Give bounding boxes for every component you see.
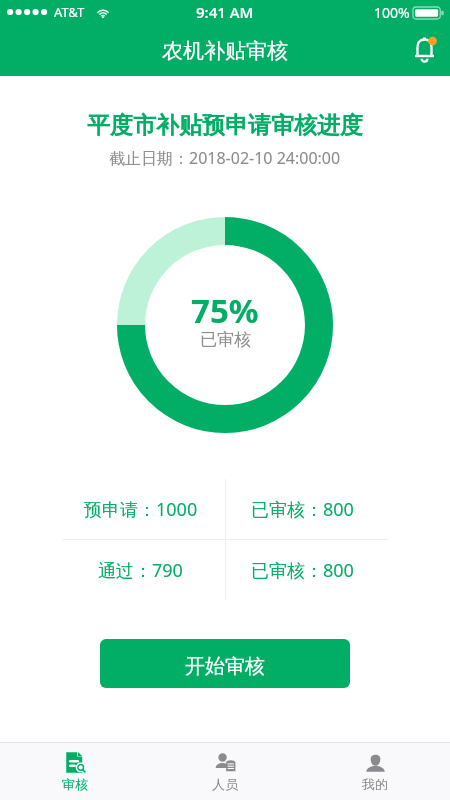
staticText: 人员 (212, 776, 238, 792)
staticText: 农机补贴审核 (162, 38, 288, 64)
staticText: AT&T (54, 3, 85, 21)
staticText: 截止日期：2018-02-10 24:00:00 (109, 147, 341, 169)
staticText: 已审核：800 (251, 558, 354, 583)
staticText: 审核 (62, 776, 88, 792)
staticText: 通过：790 (98, 558, 183, 583)
staticText: 预申请：1000 (84, 497, 198, 522)
staticText: 我的 (362, 776, 388, 792)
staticText: 已审核 (200, 329, 251, 350)
button[interactable]: 审核 (0, 743, 150, 800)
staticText: 9:41 AM (196, 2, 254, 22)
staticText: 开始审核 (185, 654, 265, 679)
staticText: 75% (191, 288, 259, 333)
staticText: 已审核：800 (251, 497, 354, 522)
button[interactable]: 我的 (300, 743, 450, 800)
staticText: 平度市补贴预申请审核进度 (87, 111, 363, 140)
button[interactable]: 开始审核 (100, 639, 350, 688)
staticText: 100% (374, 3, 410, 22)
button[interactable]: Notifications (406, 30, 442, 66)
button[interactable]: 人员 (150, 743, 300, 800)
